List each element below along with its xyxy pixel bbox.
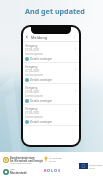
staticText: K: [44, 168, 47, 173]
staticText: And get updated: [25, 6, 85, 16]
button[interactable]: Vorgang: [23, 105, 79, 126]
staticText: Details anzeigen: [30, 99, 53, 103]
staticText: UNION: [89, 167, 96, 169]
staticText: im Land: [49, 160, 56, 162]
staticText: Lorem ipsum: [25, 94, 43, 98]
staticText: Vorgang: [25, 86, 38, 90]
staticText: 27.05.2021: [25, 69, 40, 73]
staticText: Details anzeigen: [30, 120, 53, 124]
staticText: für Wirtschaft und Energie: [10, 159, 44, 162]
staticText: 27.05.2021: [25, 90, 40, 94]
staticText: L: [51, 168, 54, 173]
button[interactable]: Vorgang: [23, 63, 79, 84]
staticText: Musterstadt: [10, 171, 27, 175]
staticText: S: [58, 168, 61, 173]
staticText: Lorem ipsum: [25, 52, 43, 56]
staticText: ⋮: [73, 35, 77, 39]
staticText: Vorgang: [25, 44, 38, 48]
button[interactable]: Vorgang: [23, 42, 79, 63]
button[interactable]: Back: [25, 33, 79, 41]
staticText: Vorgang: [25, 65, 38, 69]
button[interactable]: Vorgang: [23, 84, 79, 105]
staticText: Vorgang: [25, 107, 38, 111]
staticText: Details anzeigen: [30, 78, 53, 82]
staticText: EUROPÄISCHE: [89, 164, 103, 167]
other: Back: [25, 35, 29, 39]
staticText: Bundesministerium: [10, 156, 35, 159]
staticText: aufgrund eines Beschlusses: [10, 162, 33, 164]
staticText: O: [54, 168, 58, 173]
staticText: Stadt: [10, 168, 15, 171]
staticText: O: [47, 168, 51, 173]
staticText: Lorem ipsum: [25, 115, 43, 119]
staticText: Details anzeigen: [30, 57, 53, 61]
staticText: 27.05.2021: [25, 111, 40, 115]
staticText: IT-Sicherheit: [49, 157, 62, 160]
staticText: Meldung: [31, 35, 48, 40]
staticText: 27.05.2021: [25, 48, 40, 52]
staticText: Lorem ipsum: [25, 73, 43, 77]
